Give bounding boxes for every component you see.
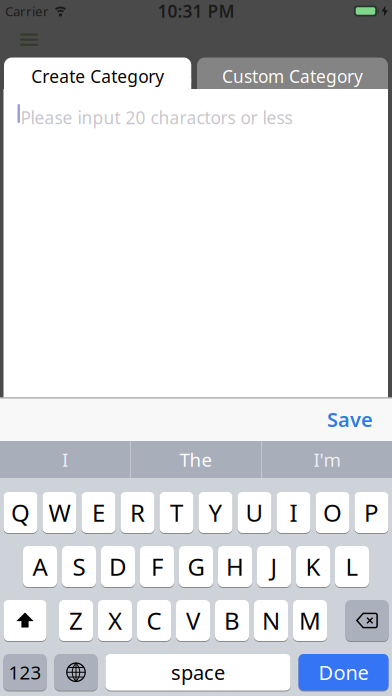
button[interactable]: C [137,600,171,641]
button[interactable]: Create Category [4,57,191,89]
button[interactable]: I [0,441,130,478]
button[interactable]: I [276,492,310,533]
staticText: Save [327,406,373,433]
staticText: I [289,497,297,528]
button[interactable]: K [296,546,330,587]
button[interactable]: Q [3,492,37,533]
staticText: Q [11,497,30,528]
staticText: R [130,497,145,528]
staticText: A [32,551,47,582]
button[interactable]: L [335,546,369,587]
staticText: G [187,551,204,582]
staticText: K [305,551,320,582]
button[interactable]: The [131,441,261,478]
button[interactable]: S [62,546,96,587]
button[interactable]: Custom Category [197,57,388,89]
staticText: Z [69,605,83,636]
button[interactable]: E [81,492,115,533]
button[interactable]: Y [198,492,232,533]
button[interactable]: Done [298,654,388,690]
button[interactable]: D [101,546,135,587]
button[interactable]: Save [327,397,392,441]
button[interactable]: N [254,600,288,641]
staticText: B [224,605,240,636]
button[interactable]: O [315,492,349,533]
button[interactable]: R [120,492,154,533]
staticText: U [245,497,263,528]
staticText: I'm [313,447,340,472]
button[interactable]: P [354,492,388,533]
staticText: Create Category [31,65,164,88]
staticText: C [146,605,161,636]
button[interactable]: I'm [262,441,392,478]
button[interactable]: Next keyboard [54,654,97,690]
button[interactable]: V [176,600,210,641]
staticText: L [345,551,358,582]
staticText: O [323,497,342,528]
button[interactable]: B [215,600,249,641]
button[interactable]: 123 [3,654,46,690]
staticText: T [170,497,183,528]
staticText: F [151,551,163,582]
staticText: I [62,447,68,472]
button[interactable]: Delete [345,600,388,641]
staticText: Y [208,497,222,528]
staticText: P [364,497,379,528]
button[interactable]: H [218,546,252,587]
staticText: M [299,605,321,636]
staticText: Custom Category [222,65,363,88]
button[interactable]: U [237,492,271,533]
button[interactable]: X [98,600,132,641]
button[interactable]: G [179,546,213,587]
staticText: X [108,605,122,636]
staticText: H [226,551,244,582]
button[interactable]: T [159,492,193,533]
staticText: S [72,551,85,582]
button[interactable]: Menu [14,27,44,52]
staticText: N [262,605,280,636]
staticText: D [109,551,127,582]
button[interactable]: space [105,654,290,690]
button[interactable]: F [140,546,174,587]
staticText: 10:31 PM [157,0,234,22]
button[interactable]: Z [59,600,93,641]
staticText: W [48,497,70,528]
button[interactable]: Shift [3,600,46,641]
staticText: The [179,447,212,472]
button[interactable]: A [23,546,57,587]
button[interactable]: M [293,600,327,641]
staticText: V [186,605,200,636]
button[interactable]: J [257,546,291,587]
staticText: Please input 20 charactors or less [20,106,292,129]
staticText: E [92,497,105,528]
staticText: Done [318,659,368,686]
staticText: J [270,551,277,582]
staticText: space [171,659,225,686]
staticText: Carrier [5,2,49,20]
button[interactable]: W [42,492,76,533]
staticText: 123 [8,660,41,685]
